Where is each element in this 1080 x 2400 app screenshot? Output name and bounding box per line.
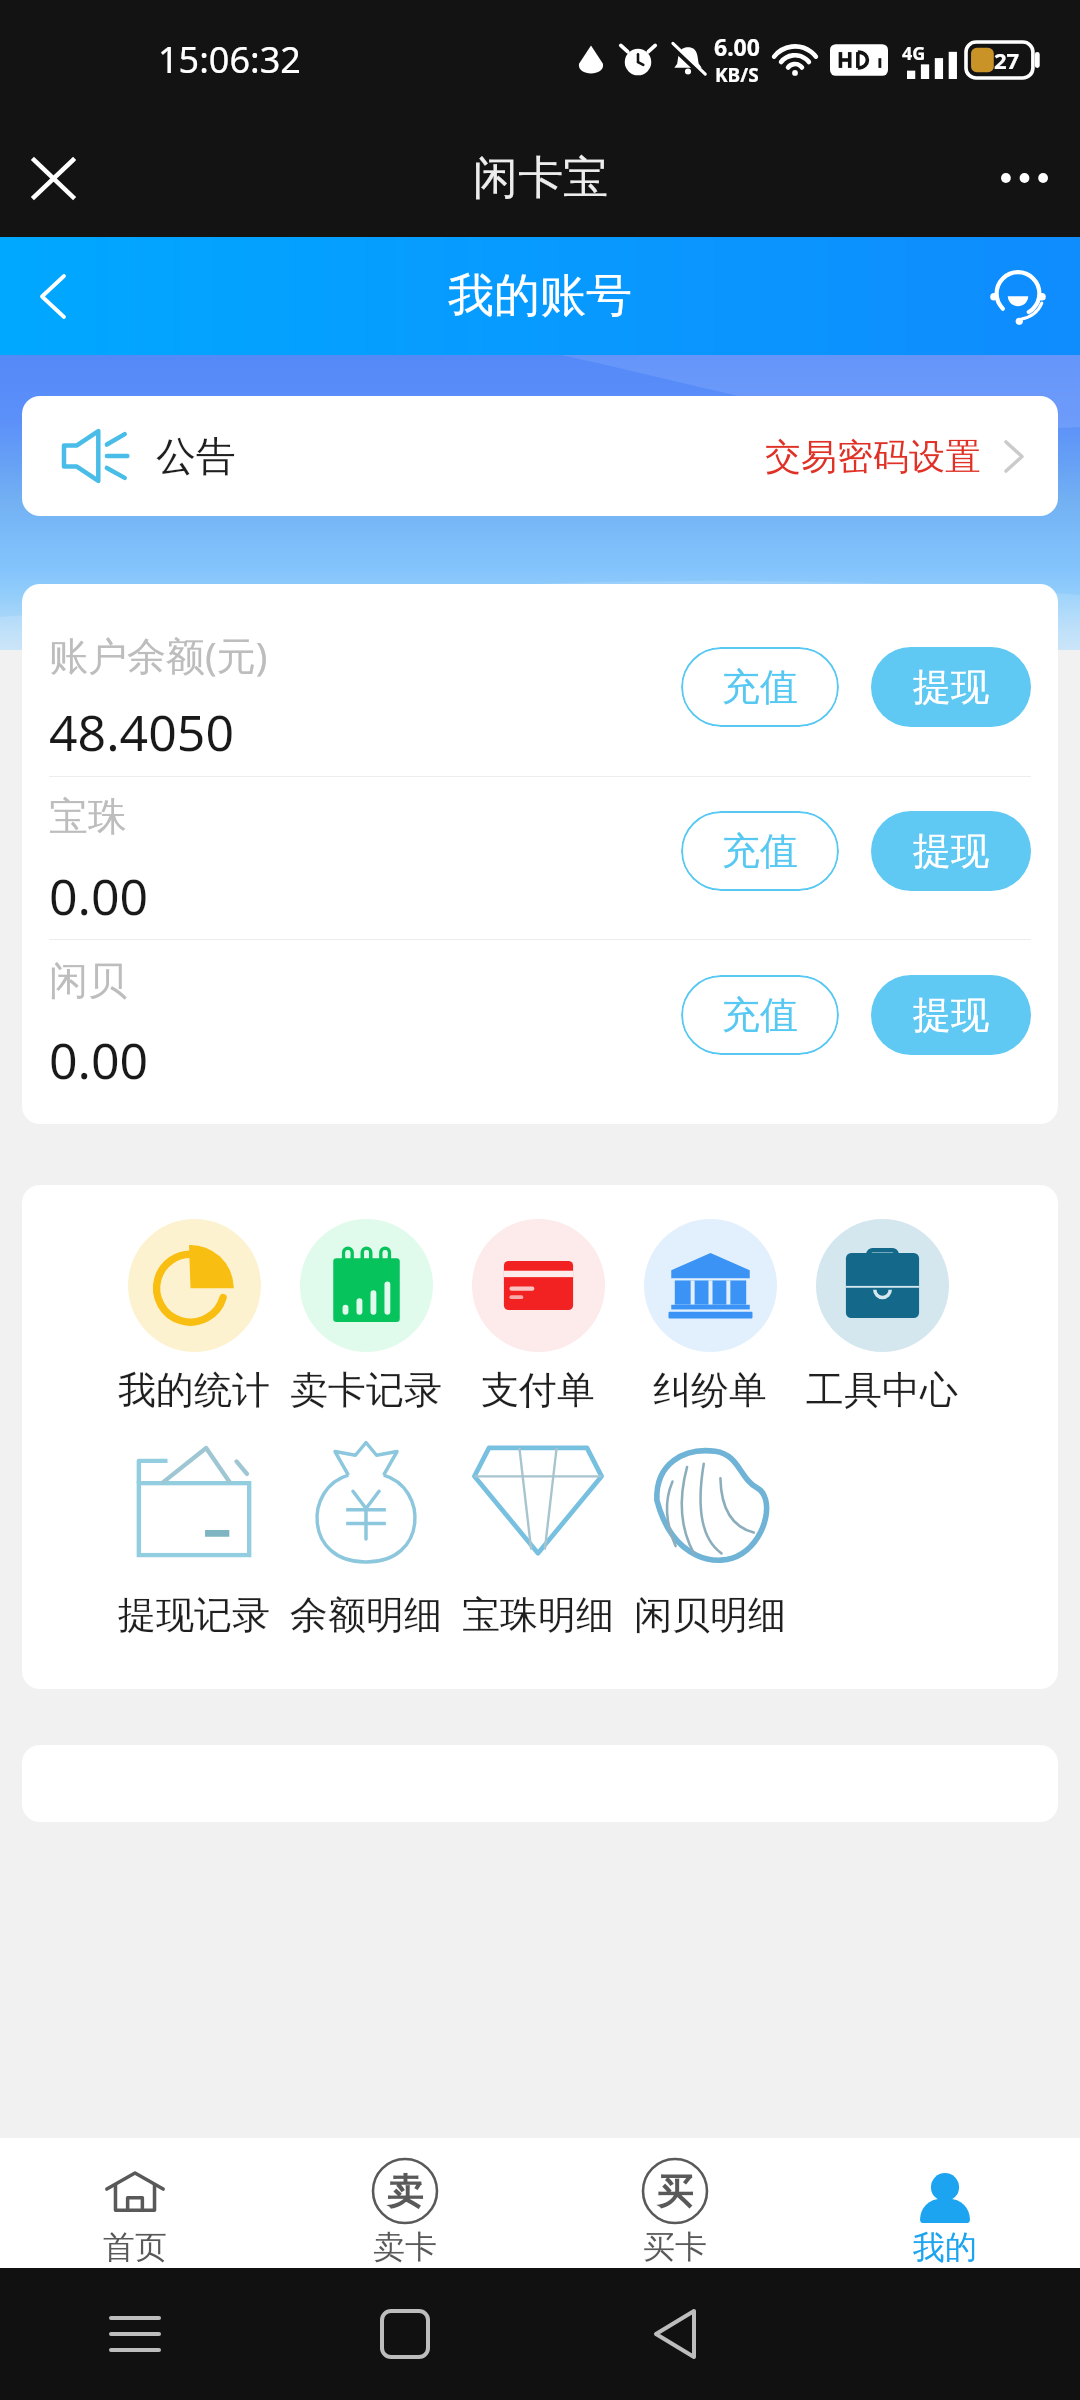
staticText: 充值 [722,663,798,711]
staticText: 卖 [387,2169,423,2214]
staticText: 宝珠明细 [462,1591,614,1639]
button[interactable]: 我的统计 [108,1219,280,1414]
staticText: 充值 [722,991,798,1039]
staticText: 卖卡记录 [290,1366,442,1414]
staticText: 4G [902,41,926,66]
button[interactable]: 支付单 [452,1219,624,1414]
button[interactable]: 买 [540,2138,810,2268]
button[interactable]: 充值 [681,975,839,1055]
button[interactable]: More options [990,144,1058,212]
staticText: 0.00 [49,862,149,930]
staticText: 27 [994,45,1020,75]
staticText: 纠纷单 [653,1366,767,1414]
staticText: 余额明细 [290,1591,442,1639]
button[interactable]: 提现记录 [108,1441,280,1639]
staticText: 我的统计 [118,1366,270,1414]
staticText: 卖卡 [373,2227,437,2267]
button[interactable]: 提现 [871,647,1031,727]
staticText: 15:06:32 [158,35,301,84]
staticText: KB/S [715,62,759,88]
staticText: 48.4050 [49,698,234,766]
button[interactable]: 工具中心 [796,1219,968,1414]
button[interactable]: 宝珠明细 [452,1441,624,1639]
button[interactable]: 首页 [0,2138,270,2268]
staticText: 买卡 [643,2227,707,2267]
staticText: 首页 [103,2227,167,2267]
button[interactable]: 我的 [810,2138,1080,2268]
button[interactable]: 卖 [270,2138,540,2268]
button[interactable]: 提现 [871,975,1031,1055]
staticText: 公告 [156,431,236,481]
button[interactable]: Back [11,254,95,338]
staticText: 提现 [913,991,989,1039]
staticText: 我的账号 [448,267,632,325]
button[interactable]: Close [19,144,87,212]
staticText: 6.00 [714,31,760,62]
button[interactable]: Customer service [976,254,1060,338]
staticText: 提现记录 [118,1591,270,1639]
staticText: 我的 [913,2227,977,2267]
staticText: 支付单 [481,1366,595,1414]
staticText: 闲贝明细 [634,1591,786,1639]
staticText: 宝珠 [49,792,127,841]
staticText: 账户余额(元) [49,628,268,681]
button[interactable]: 纠纷单 [624,1219,796,1414]
button[interactable]: 闲贝明细 [624,1441,796,1639]
button[interactable]: 余额明细 [280,1441,452,1639]
staticText: 工具中心 [806,1366,958,1414]
staticText: 充值 [722,827,798,875]
button[interactable]: 提现 [871,811,1031,891]
button[interactable]: 公告 [22,396,1058,516]
button[interactable]: 充值 [681,811,839,891]
staticText: 提现 [913,827,989,875]
staticText: 闲卡宝 [473,150,608,207]
staticText: 买 [657,2169,693,2214]
staticText: 0.00 [49,1026,149,1094]
button[interactable]: 卖卡记录 [280,1219,452,1414]
button[interactable]: 充值 [681,647,839,727]
staticText: 提现 [913,663,989,711]
staticText: 交易密码设置 [765,434,981,479]
staticText: 闲贝 [49,956,127,1005]
